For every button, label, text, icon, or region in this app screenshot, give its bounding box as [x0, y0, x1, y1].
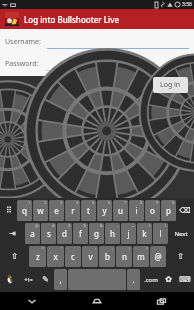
button[interactable]: i — [129, 200, 144, 221]
staticText: . — [132, 274, 135, 285]
staticText: t — [87, 205, 90, 216]
button[interactable]: h — [105, 223, 120, 244]
staticText: a — [30, 228, 35, 239]
staticText: p — [166, 205, 171, 216]
staticText: ; — [112, 246, 114, 251]
staticText: f — [79, 228, 82, 239]
staticText: h — [110, 228, 115, 239]
staticText: , — [59, 274, 62, 285]
staticText: & — [100, 223, 103, 228]
staticText: @ — [154, 251, 162, 262]
staticText: * — [42, 246, 45, 251]
staticText: r — [71, 205, 75, 216]
button[interactable]: +!= — [20, 269, 36, 290]
button[interactable]: m — [133, 246, 149, 267]
button[interactable]: o — [145, 200, 160, 221]
button[interactable]: f — [73, 223, 88, 244]
button[interactable]: 🐧 — [1, 269, 19, 290]
staticText: o — [150, 205, 155, 216]
staticText: ? — [146, 246, 148, 251]
button[interactable]: e — [49, 200, 64, 221]
button[interactable]: ⇥ — [1, 223, 24, 244]
staticText: n — [122, 251, 127, 262]
staticText: 1 — [28, 200, 31, 205]
staticText: e — [54, 205, 59, 216]
button[interactable]: a — [25, 223, 40, 244]
staticText: % — [83, 223, 87, 228]
button[interactable]: t — [81, 200, 96, 221]
staticText: 3:56 — [182, 1, 192, 8]
staticText: - — [117, 223, 119, 228]
button[interactable]: l — [153, 223, 168, 244]
staticText: 7 — [124, 200, 127, 205]
button[interactable]: b — [99, 246, 115, 267]
staticText: q — [22, 205, 27, 216]
button[interactable]: w — [33, 200, 48, 221]
staticText: z — [36, 251, 40, 262]
staticText: w — [37, 205, 44, 216]
staticText: v — [88, 251, 93, 262]
button[interactable]: x — [47, 246, 64, 267]
button[interactable]: ⌨ — [176, 269, 193, 290]
button[interactable]: u — [113, 200, 128, 221]
button[interactable]: Log in — [153, 77, 188, 93]
button[interactable]: , — [54, 269, 67, 290]
button[interactable]: r — [65, 200, 80, 221]
staticText: ✎ — [42, 275, 49, 284]
button[interactable]: . — [127, 269, 140, 290]
staticText: 5 — [92, 200, 95, 205]
button[interactable]: ⠿ — [1, 200, 16, 221]
button[interactable] — [47, 35, 189, 49]
staticText: ⠿ — [6, 206, 12, 215]
button[interactable]: n — [116, 246, 132, 267]
staticText: d — [62, 228, 67, 239]
staticText: " — [61, 246, 63, 251]
button[interactable]: g — [89, 223, 104, 244]
button[interactable]: j — [121, 223, 136, 244]
staticText: k — [142, 228, 147, 239]
staticText: g — [94, 228, 99, 239]
button[interactable] — [45, 57, 189, 71]
button[interactable]: v — [82, 246, 98, 267]
staticText: ⇧ — [11, 252, 18, 261]
button[interactable]: p — [161, 200, 176, 221]
button[interactable]: ⇧ — [1, 246, 28, 267]
staticText: l — [159, 228, 162, 239]
staticText: .com — [144, 276, 158, 284]
button[interactable]: ⇧ — [167, 246, 193, 267]
staticText: 9 — [156, 200, 159, 205]
staticText: m — [137, 251, 145, 262]
button[interactable]: Recents — [129, 292, 194, 310]
button[interactable]: z — [29, 246, 46, 267]
button[interactable]: Hide keyboard — [0, 292, 64, 310]
button[interactable]: Home — [64, 292, 129, 310]
button[interactable]: @ — [150, 246, 166, 267]
staticText: +!= — [24, 276, 33, 284]
button[interactable]: ✎ — [37, 269, 53, 290]
button[interactable]: d — [57, 223, 72, 244]
button[interactable]: k — [137, 223, 152, 244]
staticText: Username: — [5, 37, 41, 47]
button[interactable]: c — [65, 246, 81, 267]
staticText: # — [52, 223, 55, 228]
staticText: ! — [129, 246, 131, 251]
button[interactable]: .com — [141, 269, 160, 290]
staticText: 8 — [140, 200, 143, 205]
button[interactable]: q — [17, 200, 32, 221]
staticText: ✿ — [165, 275, 172, 284]
staticText: ' — [79, 246, 80, 251]
staticText: ⌨ — [179, 275, 191, 284]
staticText: : — [95, 246, 97, 251]
staticText: s — [47, 228, 51, 239]
staticText: ) — [165, 223, 167, 228]
staticText: 3 — [60, 200, 63, 205]
button[interactable]: s — [41, 223, 56, 244]
staticText: 2 — [44, 200, 47, 205]
button[interactable]: Next — [169, 223, 193, 244]
staticText: ⇧ — [177, 252, 184, 261]
staticText: 0 — [172, 200, 175, 205]
button[interactable]: ⌫ — [177, 200, 193, 221]
button[interactable]: y — [97, 200, 112, 221]
button[interactable]: ✿ — [161, 269, 175, 290]
